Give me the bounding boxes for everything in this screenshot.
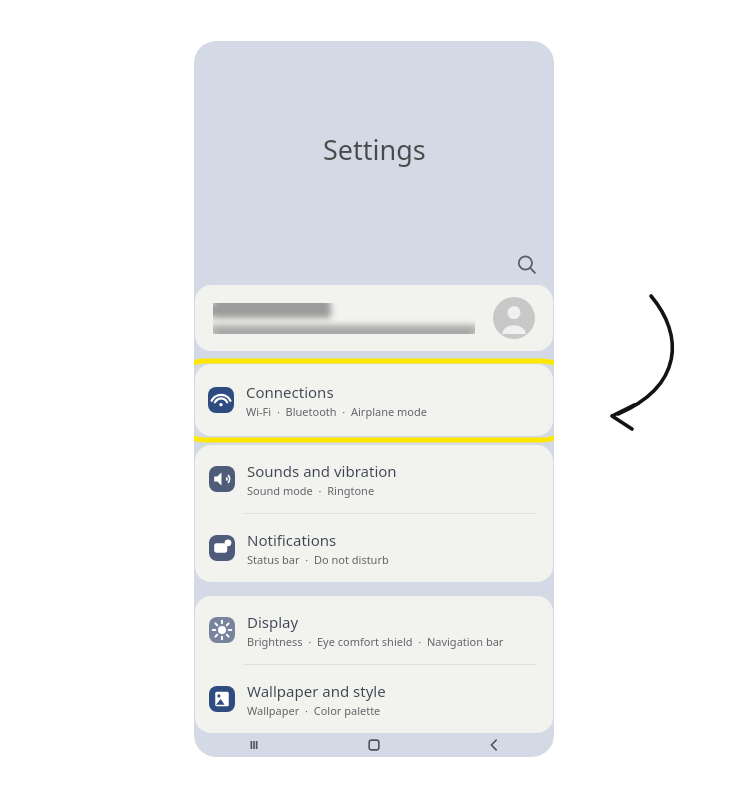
button[interactable]: Display [195,596,553,664]
button[interactable] [195,285,553,351]
staticText: Brightness · Eye comfort shield · Naviga… [247,634,504,649]
staticText: Wallpaper and style [247,681,386,701]
staticText: Sound mode · Ringtone [247,483,375,498]
button[interactable]: Sounds and vibration [195,445,553,513]
staticText: Sounds and vibration [247,461,397,481]
staticText: Settings [323,131,426,168]
button[interactable]: Recents [194,733,314,757]
button[interactable]: Wallpaper and style [195,665,553,733]
staticText: Notifications [247,530,337,550]
button[interactable]: Notifications [195,514,553,582]
staticText: Wallpaper · Color palette [247,703,381,718]
staticText: Connections [246,382,334,402]
button[interactable]: Search [511,249,543,281]
staticText: Display [247,612,299,632]
button[interactable]: Home [314,733,434,757]
staticText: Wi-Fi · Bluetooth · Airplane mode [246,404,427,419]
button[interactable]: Connections [194,364,554,436]
button[interactable]: Back [434,733,554,757]
staticText: Status bar · Do not disturb [247,552,389,567]
